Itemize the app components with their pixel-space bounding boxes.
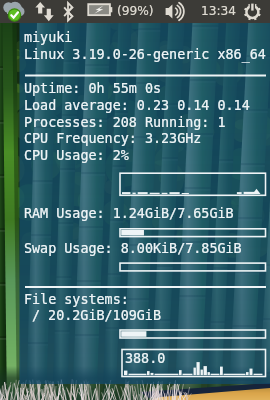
staticText: (99%) xyxy=(117,4,154,18)
button[interactable]: Battery 99 percent charging xyxy=(86,0,160,23)
staticText: Swap Usage: 8.00KiB/7.85GiB xyxy=(24,241,242,257)
button[interactable]: Session menu xyxy=(244,0,268,23)
staticText: Linux 3.19.0-26-generic x86_64 xyxy=(24,47,266,63)
button[interactable]: Bluetooth xyxy=(60,0,78,23)
staticText: Load average: 0.23 0.14 0.14 xyxy=(24,98,250,114)
staticText: 13:34 xyxy=(201,4,237,18)
staticText: miyuki xyxy=(24,30,73,46)
staticText: RAM Usage: 1.24GiB/7.65GiB xyxy=(24,206,234,222)
button[interactable]: Volume xyxy=(163,0,187,23)
staticText: File systems: xyxy=(24,292,129,308)
staticText: Uptime: 0h 55m 0s xyxy=(24,81,162,97)
staticText: CPU Frequency: 3.23GHz xyxy=(24,131,202,147)
button[interactable]: Ubuntu One sync xyxy=(1,0,24,23)
staticText: 388.0 xyxy=(125,351,166,367)
staticText: Processes: 208 Running: 1 xyxy=(24,115,226,131)
button[interactable]: Network xyxy=(33,0,55,23)
staticText: / 20.2GiB/109GiB xyxy=(32,308,161,324)
button[interactable]: 13:34 xyxy=(197,0,237,23)
staticText: CPU Usage: 2% xyxy=(24,148,129,164)
